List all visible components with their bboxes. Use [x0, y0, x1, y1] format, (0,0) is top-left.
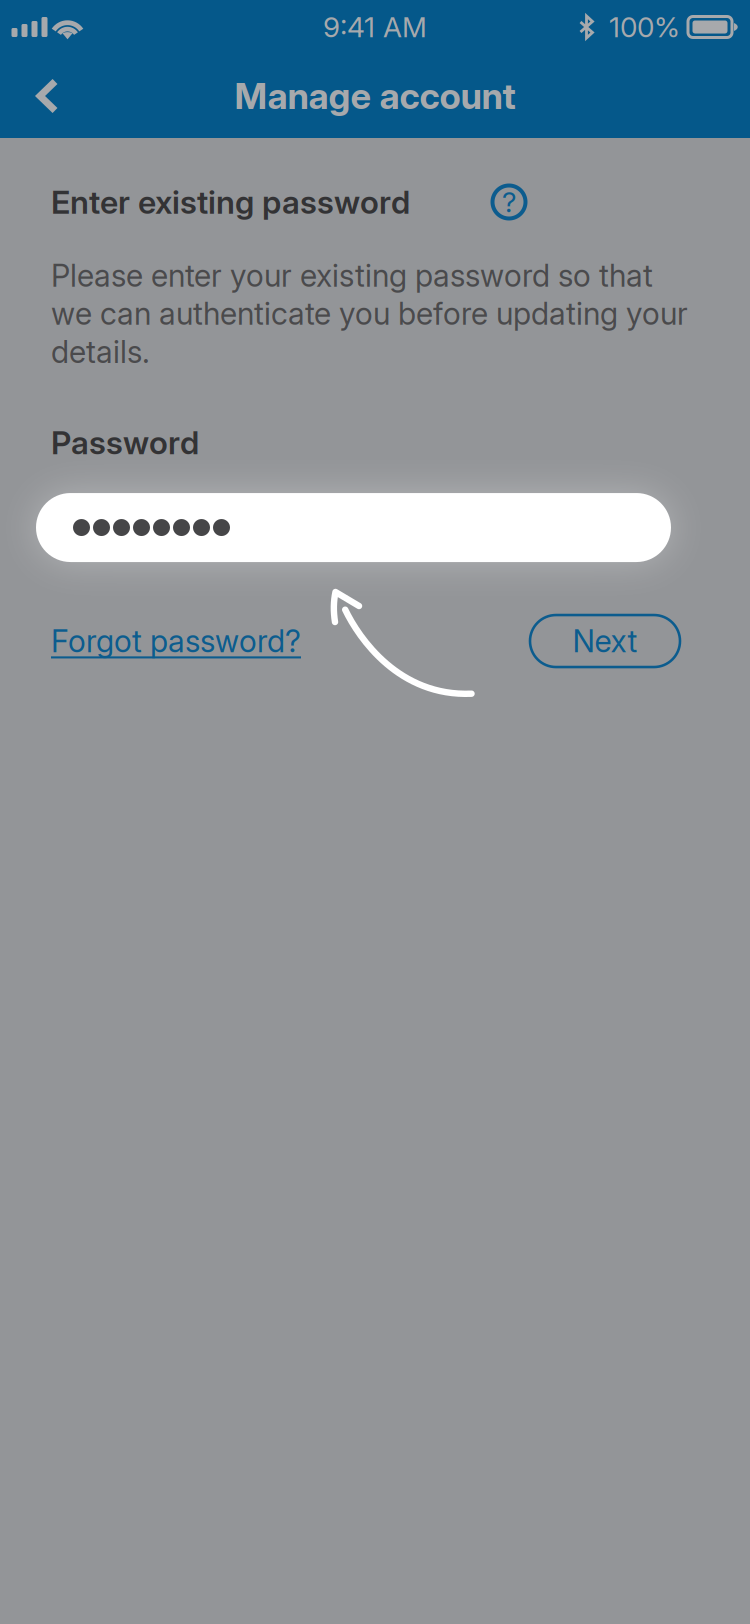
- staticText: Enter existing password: [51, 183, 410, 221]
- staticText: Next: [572, 622, 637, 660]
- staticText: Password: [51, 423, 199, 462]
- staticText: details.: [51, 333, 150, 370]
- staticText: ?: [502, 185, 516, 219]
- button[interactable]: Forgot password?: [51, 622, 301, 660]
- staticText: we can authenticate you before updating …: [51, 295, 688, 332]
- staticText: Forgot password?: [51, 622, 301, 660]
- staticText: 100%: [609, 10, 680, 44]
- button[interactable]: Password: [36, 493, 671, 562]
- staticText: Please enter your existing password so t…: [51, 257, 653, 294]
- staticText: 9:41 AM: [323, 10, 427, 44]
- button[interactable]: Help: [488, 181, 530, 223]
- button[interactable]: Back: [0, 55, 81, 137]
- button[interactable]: Next: [530, 615, 680, 667]
- staticText: Manage account: [234, 74, 515, 118]
